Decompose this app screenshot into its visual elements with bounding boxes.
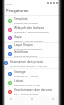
staticText: Pembaruan tersedia (14, 21, 38, 24)
staticText: Lokasi (14, 79, 24, 83)
staticText: Diizinkan untuk 12 apl (14, 83, 41, 86)
button[interactable]: Template (4, 16, 60, 25)
button[interactable]: Keamanan dan privasi (2, 58, 62, 68)
staticText: Indonesia - Bahasa Indonesia (14, 30, 49, 33)
staticText: Storage (14, 70, 26, 74)
staticText: Layar kunci & wallpaper (14, 47, 43, 50)
staticText: Template (14, 17, 28, 21)
staticText: Pemeriksaan terakhir 2 hari lalu (10, 64, 48, 67)
button[interactable]: Home (29, 96, 35, 102)
staticText: Tersedia 24 - 128 GB (14, 74, 38, 77)
button[interactable]: Lokasi (4, 78, 60, 87)
staticText: Notifikasi (14, 50, 29, 54)
button[interactable]: Wilayah dan bahasa (4, 25, 60, 34)
staticText: 10:24 (6, 2, 13, 5)
staticText: Keamanan dan privasi (10, 60, 44, 64)
button[interactable]: Layar Depan (4, 43, 60, 50)
staticText: Default - Ukuran sedang (14, 39, 43, 42)
button[interactable]: Storage (4, 69, 60, 78)
staticText: Semua aplikasi aktif (14, 54, 38, 57)
staticText: Pengaturan (6, 8, 29, 13)
staticText: SOS - Kontak darurat (14, 92, 39, 95)
button[interactable]: Back (8, 96, 14, 102)
button[interactable]: Notifikasi (4, 50, 60, 57)
staticText: Wilayah dan bahasa (14, 26, 44, 30)
staticText: Layar Depan (14, 43, 33, 47)
staticText: Keselamatan dan darurat (14, 88, 52, 92)
button[interactable]: Gaya (4, 34, 60, 42)
button[interactable]: Keselamatan dan darurat (4, 87, 60, 96)
staticText: Gaya (14, 35, 22, 39)
button[interactable]: Recents (50, 96, 56, 102)
